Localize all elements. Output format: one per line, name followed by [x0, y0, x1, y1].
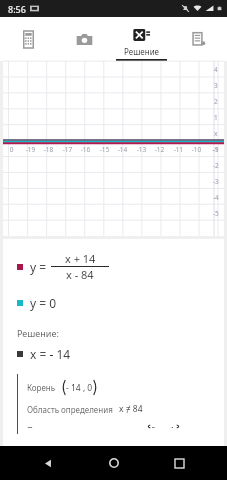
staticText: 1	[214, 113, 218, 122]
staticText: -5	[213, 209, 219, 218]
staticText: -2	[213, 161, 219, 170]
staticText: Решение:	[17, 327, 59, 339]
staticText: y =	[30, 259, 47, 275]
button[interactable]: Favourites	[170, 17, 227, 61]
staticText: - 14 , 0	[66, 382, 93, 394]
button[interactable]: Recent apps	[162, 446, 196, 480]
staticText: x - 84	[66, 267, 94, 282]
staticText: -1	[213, 145, 219, 154]
staticText: -9	[207, 145, 224, 154]
staticText: -3	[213, 177, 219, 186]
staticText: Корень	[27, 382, 56, 393]
staticText: 0	[3, 145, 20, 154]
staticText: -13	[133, 145, 150, 154]
staticText: Решение	[124, 46, 160, 57]
staticText: 3	[214, 81, 218, 90]
staticText: -10	[188, 145, 205, 154]
staticText: 1	[170, 425, 175, 428]
staticText: 8:56	[8, 3, 26, 15]
staticText: 4	[214, 65, 218, 74]
staticText: -17	[59, 145, 76, 154]
staticText: Область определения	[27, 404, 113, 415]
button[interactable]: Camera	[56, 17, 113, 61]
staticText: -11	[170, 145, 187, 154]
staticText: Пересечение с осью ординат	[27, 425, 141, 428]
staticText: -15	[96, 145, 113, 154]
staticText: x ≠ 84	[119, 403, 143, 415]
staticText: 0 , -	[151, 425, 166, 428]
staticText: -19	[22, 145, 39, 154]
staticText: -12	[151, 145, 168, 154]
button[interactable]: Home	[97, 446, 131, 480]
staticText: -16	[77, 145, 94, 154]
staticText: -18	[40, 145, 57, 154]
button[interactable]: Back	[31, 446, 65, 480]
staticText: x + 14	[65, 251, 96, 266]
button[interactable]: Calculator	[0, 17, 56, 61]
staticText: y = 0	[30, 295, 57, 311]
button[interactable]: Решение	[113, 17, 170, 61]
staticText: -4	[213, 193, 219, 202]
staticText: -14	[114, 145, 131, 154]
staticText: 2	[214, 97, 218, 106]
staticText: x	[214, 129, 218, 138]
staticText: x = - 14	[30, 346, 71, 362]
